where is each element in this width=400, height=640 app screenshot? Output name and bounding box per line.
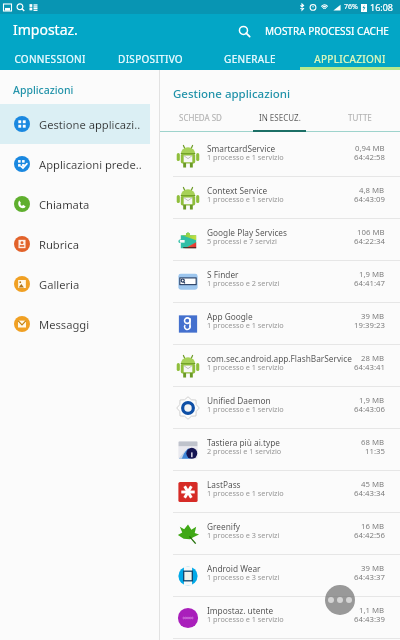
staticText: Galleria bbox=[39, 277, 80, 292]
button[interactable]: Assistive menu bbox=[325, 585, 355, 615]
button[interactable]: Impostaz. utente bbox=[160, 597, 400, 639]
button[interactable]: LastPass bbox=[160, 471, 400, 513]
staticText: Gestione applicazioni bbox=[173, 86, 291, 102]
staticText: com.sec.android.app.FlashBarService bbox=[207, 353, 352, 364]
staticText: LastPass bbox=[207, 479, 241, 490]
staticText: Rubrica bbox=[39, 237, 79, 252]
staticText: MOSTRA PROCESSI CACHE bbox=[265, 24, 389, 38]
staticText: DISPOSITIVO bbox=[118, 52, 183, 66]
staticText: App Google bbox=[207, 311, 253, 322]
staticText: 64:41:47 bbox=[354, 278, 385, 289]
staticText: 68 MB bbox=[361, 437, 385, 448]
button[interactable]: com.sec.android.app.FlashBarService bbox=[160, 345, 400, 387]
staticText: 64:42:58 bbox=[354, 152, 385, 163]
staticText: 1 processo e 1 servizio bbox=[207, 320, 284, 330]
staticText: 64:43:09 bbox=[354, 194, 385, 205]
button[interactable]: S Finder bbox=[160, 261, 400, 303]
staticText: 76% bbox=[344, 2, 358, 12]
staticText: 1 processo e 2 servizi bbox=[207, 278, 280, 288]
staticText: Tastiera più ai.type bbox=[207, 437, 281, 448]
button[interactable]: App Google bbox=[160, 303, 400, 345]
staticText: APPLICAZIONI bbox=[314, 52, 386, 66]
staticText: 64:42:56 bbox=[354, 530, 385, 541]
button[interactable]: TUTTE bbox=[320, 103, 400, 132]
button[interactable]: Rubrica bbox=[0, 224, 150, 264]
button[interactable]: Galleria bbox=[0, 264, 150, 304]
staticText: 64:43:34 bbox=[354, 488, 385, 499]
button[interactable]: DISPOSITIVO bbox=[100, 47, 200, 70]
staticText: 16:08 bbox=[370, 1, 394, 13]
staticText: 45 MB bbox=[361, 479, 385, 490]
staticText: 19:39:23 bbox=[354, 320, 385, 331]
staticText: Applicazioni prede.. bbox=[39, 157, 142, 172]
button[interactable]: Applicazioni prede.. bbox=[0, 144, 150, 184]
staticText: 106 MB bbox=[357, 227, 385, 238]
button[interactable]: Google Play Services bbox=[160, 219, 400, 261]
staticText: 64:43:39 bbox=[354, 614, 385, 625]
staticText: 1,1 MB bbox=[359, 605, 385, 616]
staticText: 1 processo e 1 servizio bbox=[207, 404, 284, 414]
button[interactable]: Context Service bbox=[160, 177, 400, 219]
button[interactable]: SmartcardService bbox=[160, 135, 400, 177]
staticText: Impostaz. bbox=[13, 20, 78, 39]
staticText: 64:43:06 bbox=[354, 404, 385, 415]
staticText: 64:43:41 bbox=[354, 362, 385, 373]
staticText: 1 processo e 3 servizi bbox=[207, 572, 280, 582]
button[interactable]: Gestione applicazi.. bbox=[0, 104, 150, 144]
button[interactable]: Cerca bbox=[238, 14, 400, 47]
staticText: 1,9 MB bbox=[359, 269, 385, 280]
staticText: 1 processo e 1 servizio bbox=[207, 194, 284, 204]
button[interactable]: Unified Daemon bbox=[160, 387, 400, 429]
staticText: SCHEDA SD bbox=[179, 112, 222, 123]
staticText: Unified Daemon bbox=[207, 395, 271, 406]
staticText: 1 processo e 1 servizio bbox=[207, 362, 284, 372]
button[interactable]: Messaggi bbox=[0, 304, 150, 344]
staticText: Android Wear bbox=[207, 563, 261, 574]
staticText: Messaggi bbox=[39, 317, 90, 332]
button[interactable]: GENERALE bbox=[200, 47, 300, 70]
staticText: 0,94 MB bbox=[355, 143, 385, 154]
staticText: CONNESSIONI bbox=[14, 52, 86, 66]
staticText: 28 MB bbox=[361, 353, 385, 364]
staticText: Chiamata bbox=[39, 197, 90, 212]
staticText: 1 processo e 3 servizi bbox=[207, 530, 280, 540]
staticText: 1 processo e 1 servizio bbox=[207, 488, 284, 498]
staticText: IN ESECUZ. bbox=[259, 112, 301, 123]
button[interactable]: Greenify bbox=[160, 513, 400, 555]
button[interactable]: CONNESSIONI bbox=[0, 47, 100, 70]
staticText: 5 processi e 7 servizi bbox=[207, 236, 277, 246]
staticText: Google Play Services bbox=[207, 227, 288, 238]
button[interactable]: Tastiera più ai.type bbox=[160, 429, 400, 471]
staticText: 11:35 bbox=[365, 446, 385, 457]
staticText: 64:43:37 bbox=[354, 572, 385, 583]
staticText: Greenify bbox=[207, 521, 241, 532]
staticText: Applicazioni bbox=[13, 83, 74, 97]
staticText: 2 processi e 1 servizio bbox=[207, 446, 282, 456]
staticText: 39 MB bbox=[361, 563, 385, 574]
staticText: 1 processo e 1 servizio bbox=[207, 152, 284, 162]
staticText: 16 MB bbox=[361, 521, 385, 532]
staticText: Impostaz. utente bbox=[207, 605, 274, 616]
staticText: Gestione applicazi.. bbox=[39, 117, 141, 132]
button[interactable]: SCHEDA SD bbox=[160, 103, 240, 132]
staticText: GENERALE bbox=[224, 52, 276, 66]
button[interactable]: Chiamata bbox=[0, 184, 150, 224]
staticText: 64:22:34 bbox=[354, 236, 385, 247]
staticText: Context Service bbox=[207, 185, 268, 196]
button[interactable]: IN ESECUZ. bbox=[240, 103, 320, 132]
button[interactable]: APPLICAZIONI bbox=[300, 47, 400, 70]
staticText: 1,9 MB bbox=[359, 395, 385, 406]
staticText: TUTTE bbox=[348, 112, 372, 123]
staticText: SmartcardService bbox=[207, 143, 276, 154]
staticText: S Finder bbox=[207, 269, 239, 280]
staticText: 39 MB bbox=[361, 311, 385, 322]
button[interactable]: Android Wear bbox=[160, 555, 400, 597]
staticText: 1 processo e 1 servizio bbox=[207, 614, 284, 624]
staticText: 4,8 MB bbox=[359, 185, 385, 196]
